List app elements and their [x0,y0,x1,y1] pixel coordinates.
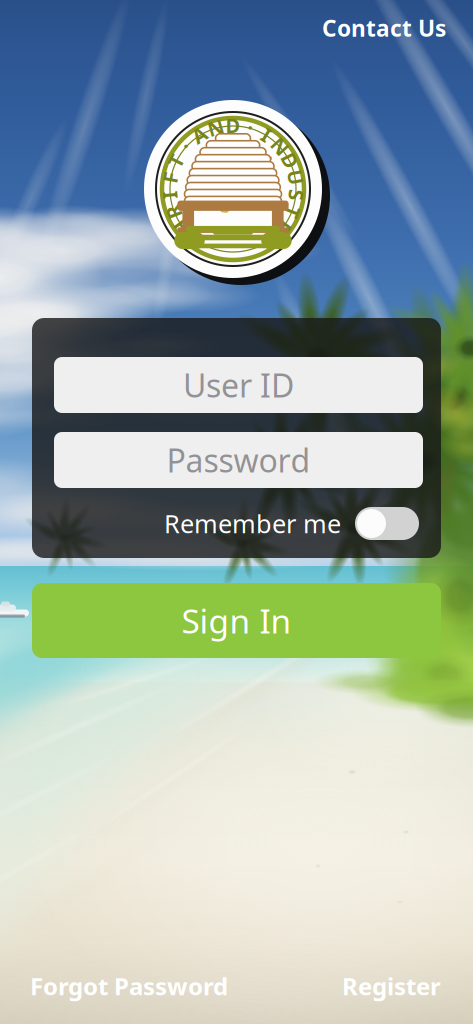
button[interactable]: Contact Us [296,11,446,45]
staticText: F [165,164,176,191]
staticText: I [166,182,174,208]
staticText: R [167,199,180,225]
staticText: N [208,114,224,141]
staticText: D [283,147,298,174]
staticText: Register [342,970,441,1002]
staticText: T [170,147,182,174]
staticText: Remember me [164,507,341,540]
staticText: User ID [183,364,294,406]
button[interactable]: Forgot Password [30,969,230,1003]
staticText: Y [265,227,278,253]
staticText: · [183,133,189,159]
button[interactable]: Sign In [32,583,441,658]
staticText: S [291,182,302,208]
button[interactable]: Register [321,969,441,1003]
staticText: Password [166,439,310,481]
staticText: A [192,121,206,148]
staticText: H [175,214,190,241]
staticText: D [225,112,240,139]
staticText: I [263,121,271,148]
staticText: T [189,227,201,253]
button[interactable]: Remember me [200,507,419,540]
staticText: R [277,214,290,241]
staticText: U [288,164,303,191]
staticText: Forgot Password [30,970,228,1002]
staticText: · [247,114,253,141]
staticText: Sign In [181,598,291,643]
staticText: T [286,199,298,225]
staticText: Contact Us [322,13,446,43]
staticText: N [272,133,288,159]
